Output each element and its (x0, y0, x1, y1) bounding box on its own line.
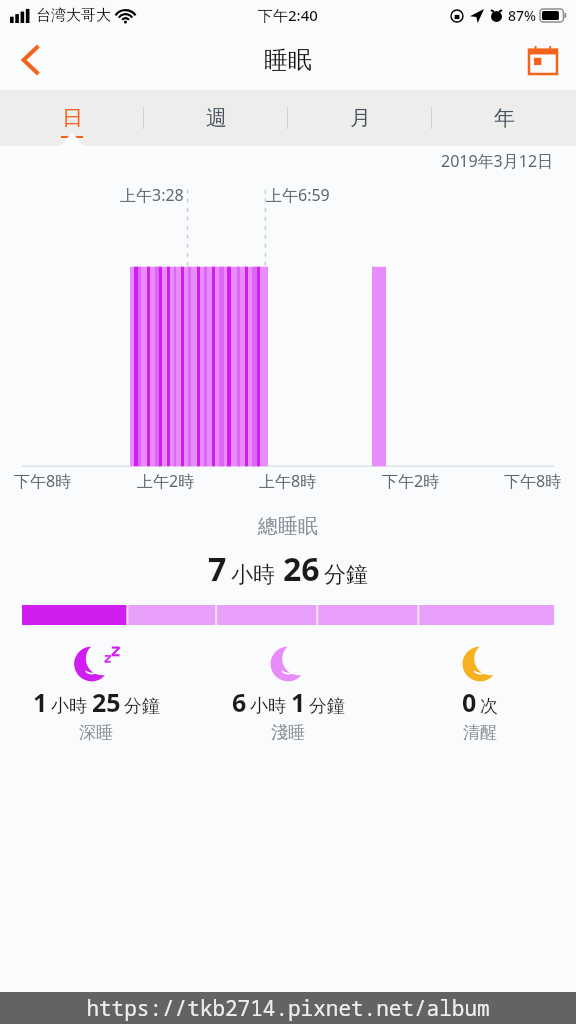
button[interactable]: 月 (288, 90, 432, 146)
staticText: 分鐘 (324, 561, 368, 589)
button[interactable]: 年 (432, 90, 576, 146)
staticText: 上午6:59 (266, 184, 330, 206)
staticText: https://tkb2714.pixnet.net/album (86, 994, 490, 1023)
staticText: 淺睡 (271, 722, 305, 743)
button[interactable]: Calendar (520, 37, 566, 83)
staticText: 次 (480, 695, 498, 718)
button[interactable]: 0 (384, 643, 576, 743)
button[interactable]: 日 (0, 90, 144, 146)
staticText: 清醒 (463, 722, 497, 743)
staticText: 深睡 (79, 722, 113, 743)
staticText: 睡眠 (264, 45, 312, 75)
staticText: 87% (508, 6, 536, 25)
staticText: 總睡眠 (258, 514, 318, 539)
staticText: 1 (33, 685, 48, 719)
staticText: 小時 (250, 695, 286, 718)
staticText: 上午8時 (259, 470, 317, 492)
staticText: 下午8時 (14, 470, 72, 492)
button[interactable]: Back (8, 36, 56, 84)
staticText: 小時 (51, 695, 87, 718)
staticText: 26 (283, 547, 320, 591)
staticText: 日 (62, 105, 83, 131)
staticText: 上午2時 (137, 470, 195, 492)
button[interactable]: 週 (144, 90, 288, 146)
button[interactable]: 1 (0, 643, 192, 743)
staticText: 2019年3月12日 (441, 150, 554, 172)
staticText: 下午8時 (504, 470, 562, 492)
staticText: 下午2時 (382, 470, 440, 492)
staticText: 月 (350, 105, 371, 131)
staticText: 年 (494, 105, 515, 131)
staticText: 25 (92, 685, 121, 719)
staticText: 台湾大哥大 (36, 6, 111, 25)
staticText: 上午3:28 (120, 184, 184, 206)
staticText: 6 (232, 685, 247, 719)
staticText: 週 (206, 105, 227, 131)
staticText: 0 (462, 685, 477, 719)
staticText: 下午2:40 (258, 5, 318, 25)
staticText: 分鐘 (309, 695, 345, 718)
staticText: 分鐘 (124, 695, 160, 718)
staticText: 1 (291, 685, 306, 719)
staticText: 小時 (231, 561, 275, 589)
button[interactable]: 6 (192, 643, 384, 743)
staticText: 7 (208, 547, 227, 591)
